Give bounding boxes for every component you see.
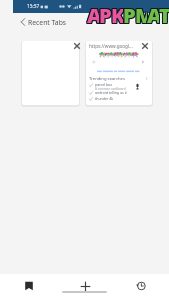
staticText: Recent Tabs xyxy=(28,18,67,27)
staticText: P xyxy=(100,3,112,25)
staticText: T xyxy=(159,2,169,24)
staticText: A xyxy=(146,1,158,23)
staticText: android telling us it now xyxy=(95,90,133,95)
staticText: P xyxy=(100,2,112,24)
staticText: P xyxy=(124,3,136,25)
staticText: A xyxy=(88,3,100,25)
staticText: https://www.googl... xyxy=(89,43,139,49)
staticText: K xyxy=(111,2,123,24)
staticText: parcel box xyxy=(95,82,113,87)
staticText: A xyxy=(146,3,158,25)
staticText: M xyxy=(136,3,148,25)
button[interactable]: Close tab xyxy=(139,40,151,52)
button[interactable]: Bookmarks xyxy=(0,274,57,300)
staticText: M xyxy=(134,1,146,23)
staticText: M xyxy=(134,2,146,24)
staticText: P xyxy=(99,3,111,25)
staticText: A xyxy=(147,3,159,25)
staticText: P xyxy=(98,1,110,23)
staticText: A xyxy=(87,1,99,23)
staticText: K xyxy=(111,3,123,25)
button[interactable] xyxy=(22,41,79,105)
staticText: A xyxy=(86,2,98,24)
staticText: A xyxy=(148,1,160,23)
staticText: A xyxy=(87,2,99,24)
staticText: P xyxy=(100,1,112,23)
staticText: A xyxy=(147,2,159,24)
staticText: M xyxy=(136,2,148,24)
staticText: T xyxy=(158,2,169,24)
staticText: A xyxy=(86,1,98,23)
staticText: A xyxy=(88,2,100,24)
staticText: P xyxy=(98,3,110,25)
staticText: M xyxy=(135,3,147,25)
staticText: T xyxy=(160,3,169,25)
staticText: A xyxy=(87,3,99,25)
staticText: K xyxy=(112,2,124,24)
staticText: P xyxy=(124,1,136,23)
staticText: P xyxy=(124,2,136,24)
button[interactable]: android telling us it now xyxy=(89,90,133,95)
staticText: P xyxy=(122,2,134,24)
staticText: M xyxy=(136,1,148,23)
staticText: 15:57 xyxy=(27,3,40,10)
staticText: K xyxy=(112,1,124,23)
staticText: K xyxy=(112,3,124,25)
staticText: T xyxy=(160,2,169,24)
staticText: A xyxy=(88,1,100,23)
button[interactable]: thunder 4k xyxy=(89,96,133,101)
staticText: thunder 4k xyxy=(95,96,114,101)
staticText: A xyxy=(148,3,160,25)
staticText: M xyxy=(134,3,146,25)
staticText: P xyxy=(122,1,134,23)
staticText: T xyxy=(160,1,169,23)
staticText: A xyxy=(146,2,158,24)
staticText: P xyxy=(123,3,135,25)
staticText: T xyxy=(159,3,169,25)
staticText: M xyxy=(135,2,147,24)
staticText: T xyxy=(159,1,169,23)
staticText: T xyxy=(158,3,169,25)
staticText: K xyxy=(111,1,123,23)
staticText: P xyxy=(98,2,110,24)
staticText: Trending searches xyxy=(89,76,125,82)
staticText: K xyxy=(110,1,122,23)
staticText: P xyxy=(99,2,111,24)
button[interactable]: Close tab xyxy=(71,40,83,52)
staticText: A xyxy=(147,1,159,23)
button[interactable]: parcel box xyxy=(89,82,133,91)
button[interactable]: New tab xyxy=(57,274,113,300)
staticText: T xyxy=(158,1,169,23)
staticText: P xyxy=(99,1,111,23)
staticText: A xyxy=(148,2,160,24)
staticText: A xyxy=(86,3,98,25)
staticText: K xyxy=(110,3,122,25)
staticText: P xyxy=(123,2,135,24)
staticText: P xyxy=(122,3,134,25)
staticText: A common cardboard parcel xyxy=(95,87,133,91)
staticText: K xyxy=(110,2,122,24)
button[interactable]: History xyxy=(113,274,169,300)
button[interactable]: Back xyxy=(17,17,27,27)
button[interactable]: https://www.googl... xyxy=(86,41,152,105)
staticText: P xyxy=(123,1,135,23)
staticText: M xyxy=(135,1,147,23)
